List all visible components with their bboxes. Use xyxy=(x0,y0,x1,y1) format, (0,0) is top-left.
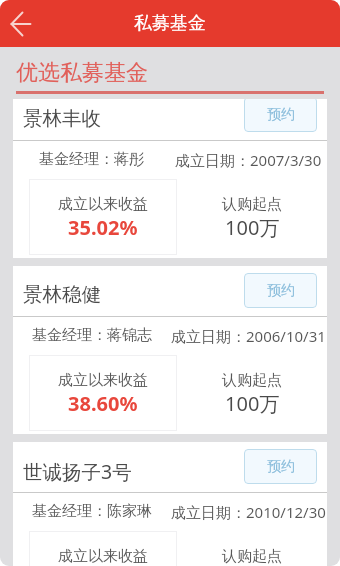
staticText: 预约 xyxy=(267,458,295,476)
staticText: 景林丰收 xyxy=(23,106,101,131)
staticText: 成立日期：2010/12/30 xyxy=(171,502,326,522)
staticText: 100万 xyxy=(225,214,280,241)
staticText: 私募基金 xyxy=(134,12,206,35)
staticText: 预约 xyxy=(267,106,295,124)
staticText: 38.60% xyxy=(68,390,138,417)
staticText: 35.02% xyxy=(68,214,138,241)
button[interactable]: Back xyxy=(0,1,46,47)
button[interactable]: 预约 xyxy=(244,449,317,484)
staticText: 认购起点 xyxy=(222,547,282,566)
staticText: 基金经理：蒋锦志 xyxy=(32,326,152,345)
staticText: 景林稳健 xyxy=(23,282,101,307)
button[interactable]: 世诚扬子3号 xyxy=(13,442,327,566)
staticText: 成立以来收益 xyxy=(58,371,148,390)
staticText: 世诚扬子3号 xyxy=(23,458,132,485)
staticText: 成立日期：2007/3/30 xyxy=(175,150,322,170)
staticText: 基金经理：蒋彤 xyxy=(39,150,144,169)
staticText: 基金经理：陈家琳 xyxy=(32,502,152,521)
staticText: 优选私募基金 xyxy=(16,59,148,87)
staticText: 成立日期：2006/10/31 xyxy=(171,326,326,346)
staticText: 认购起点 xyxy=(222,195,282,214)
button[interactable]: 预约 xyxy=(244,273,317,308)
button[interactable]: 景林丰收 xyxy=(13,99,327,258)
staticText: 预约 xyxy=(267,282,295,300)
staticText: 成立以来收益 xyxy=(58,195,148,214)
button[interactable]: 预约 xyxy=(244,99,317,132)
staticText: 认购起点 xyxy=(222,371,282,390)
staticText: 成立以来收益 xyxy=(58,547,148,566)
staticText: 100万 xyxy=(225,390,280,417)
button[interactable]: 景林稳健 xyxy=(13,266,327,434)
